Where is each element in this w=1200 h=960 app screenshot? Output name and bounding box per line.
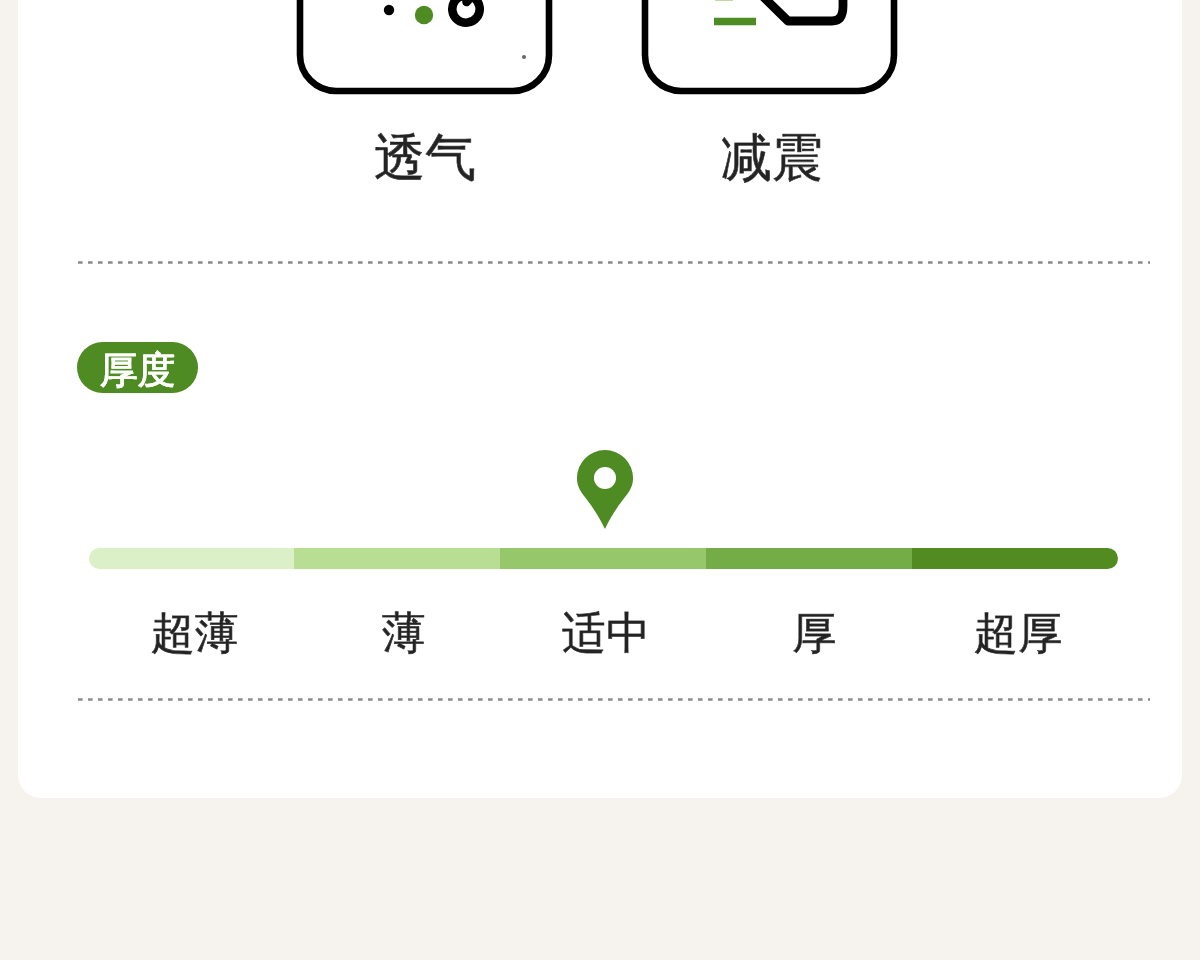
button[interactable]: Thickness scale	[89, 548, 1118, 569]
staticText: 超厚	[928, 606, 1108, 661]
staticText: 厚度	[77, 346, 198, 393]
staticText: 厚	[724, 606, 904, 661]
staticText: 适中	[516, 606, 696, 661]
button[interactable]: 透气 breathable	[300, 0, 550, 192]
staticText: 超薄	[105, 606, 285, 661]
button[interactable]: 超薄	[105, 606, 285, 664]
button[interactable]: 厚度	[77, 342, 198, 393]
button[interactable]: 减震 shock absorbing	[645, 0, 895, 192]
staticText: 超厚	[928, 606, 1108, 661]
staticText: 超薄	[105, 606, 285, 661]
staticText: 减震	[707, 126, 837, 190]
button[interactable]: 适中	[516, 606, 696, 664]
staticText: 薄	[314, 606, 494, 661]
button[interactable]: 厚	[724, 606, 904, 664]
button[interactable]: 超厚	[928, 606, 1108, 664]
staticText: 透气	[360, 126, 490, 190]
staticText: 适中	[516, 606, 696, 661]
other: Selected thickness 适中	[577, 450, 633, 529]
button[interactable]: 薄	[314, 606, 494, 664]
staticText: 厚	[724, 606, 904, 661]
staticText: 透气	[360, 126, 490, 190]
staticText: 减震	[707, 126, 837, 190]
staticText: 厚度	[77, 346, 198, 393]
staticText: 薄	[314, 606, 494, 661]
